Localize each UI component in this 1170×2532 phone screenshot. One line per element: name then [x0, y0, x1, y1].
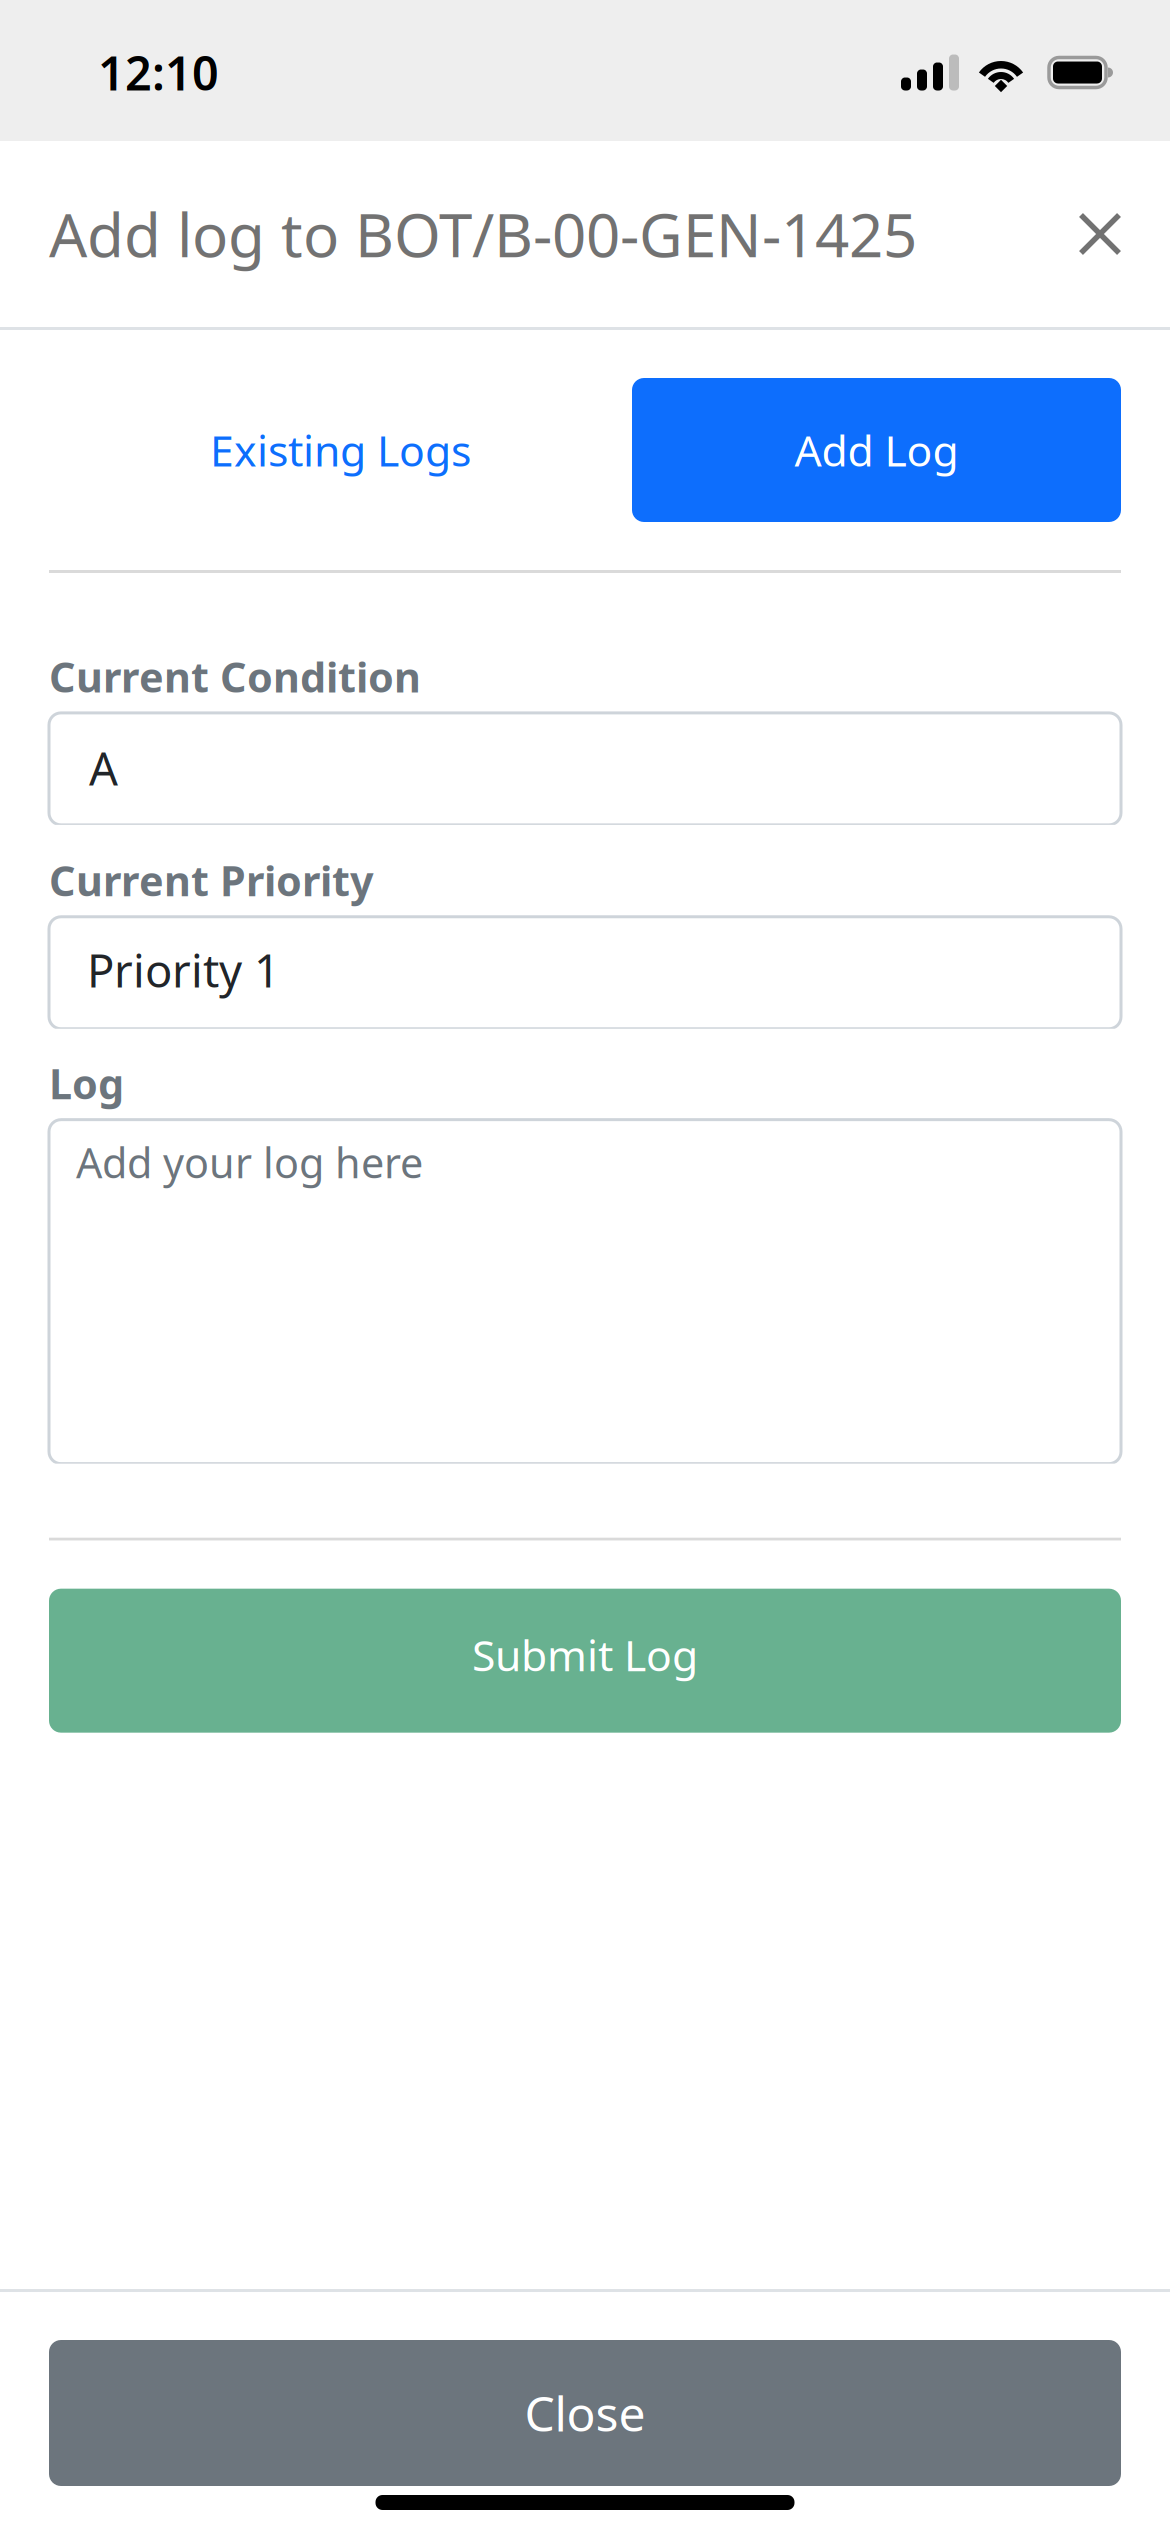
staticText: 12:10 [98, 41, 219, 103]
button[interactable]: Close [1068, 202, 1132, 266]
staticText: Submit Log [472, 1626, 698, 1683]
button[interactable]: Existing Logs [49, 378, 632, 522]
staticText: Priority 1 [87, 940, 280, 1000]
staticText: Add Log [794, 422, 958, 478]
button[interactable]: A [49, 713, 1121, 825]
staticText: Close [524, 2381, 645, 2445]
staticText: Add your log here [76, 1135, 423, 1190]
staticText: Current Condition [49, 649, 421, 704]
staticText: Add log to BOT/B-00-GEN-1425 [49, 194, 917, 274]
button[interactable]: Submit Log [49, 1589, 1121, 1733]
staticText: Existing Logs [210, 422, 471, 478]
button[interactable]: Priority 1 [49, 917, 1121, 1029]
button[interactable]: Close [49, 2340, 1121, 2486]
staticText: A [89, 738, 118, 798]
staticText: Current Priority [49, 853, 374, 908]
button[interactable]: Add your log here [49, 1120, 1121, 1464]
button[interactable]: Add Log [632, 378, 1121, 522]
staticText: Log [49, 1056, 124, 1111]
